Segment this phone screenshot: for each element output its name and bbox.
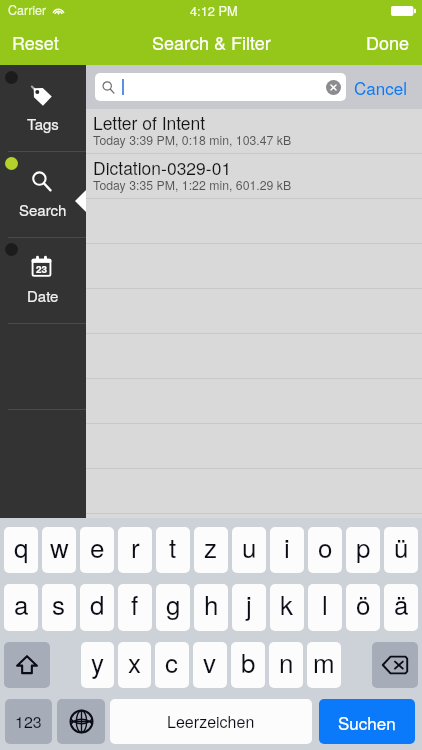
staticText: h: [204, 585, 219, 622]
staticText: z: [204, 528, 218, 565]
staticText: Leerzeichen: [167, 710, 255, 733]
button[interactable]: n: [269, 642, 303, 688]
button[interactable]: Next keyboard: [57, 699, 105, 744]
button[interactable]: g: [156, 584, 190, 631]
button[interactable]: l: [308, 584, 342, 631]
button[interactable]: r: [118, 527, 152, 573]
button[interactable]: y: [81, 642, 114, 688]
staticText: x: [128, 643, 142, 680]
button[interactable]: Suchen: [319, 699, 415, 744]
staticText: Letter of Intent: [93, 110, 206, 135]
staticText: Dictation-0329-01: [93, 155, 232, 180]
button[interactable]: Reset: [0, 25, 71, 65]
staticText: s: [52, 585, 66, 622]
button[interactable]: j: [232, 584, 266, 631]
staticText: 4:12 PM: [190, 1, 238, 19]
button[interactable]: z: [194, 527, 228, 573]
staticText: g: [166, 585, 181, 622]
staticText: q: [14, 528, 29, 565]
button[interactable]: ü: [384, 527, 418, 573]
button[interactable]: b: [231, 642, 265, 688]
button[interactable]: Leerzeichen: [110, 699, 312, 744]
staticText: ä: [394, 585, 409, 622]
button[interactable]: Clear text: [326, 80, 341, 95]
staticText: v: [203, 643, 217, 680]
button[interactable]: ä: [384, 584, 418, 631]
button[interactable]: 23: [0, 237, 86, 323]
staticText: o: [318, 528, 333, 565]
staticText: e: [90, 528, 105, 565]
staticText: ö: [356, 585, 371, 622]
staticText: j: [246, 585, 252, 622]
staticText: Carrier: [8, 1, 47, 19]
staticText: a: [14, 585, 29, 622]
staticText: f: [131, 585, 139, 622]
staticText: y: [91, 643, 105, 680]
staticText: Search & Filter: [152, 29, 271, 55]
staticText: l: [322, 585, 328, 622]
button[interactable]: a: [4, 584, 38, 631]
button[interactable]: Backspace: [372, 642, 418, 688]
staticText: Reset: [12, 29, 59, 55]
button[interactable]: p: [346, 527, 380, 573]
button[interactable]: v: [193, 642, 227, 688]
staticText: n: [279, 643, 294, 680]
staticText: Suchen: [338, 710, 396, 734]
button[interactable]: w: [42, 527, 76, 573]
staticText: Cancel: [354, 75, 407, 99]
button[interactable]: s: [42, 584, 76, 631]
staticText: d: [90, 585, 105, 622]
staticText: b: [241, 643, 256, 680]
button[interactable]: h: [194, 584, 228, 631]
staticText: w: [50, 528, 69, 565]
staticText: t: [169, 528, 177, 565]
button[interactable]: Cancel: [346, 65, 415, 109]
button[interactable]: Search: [0, 151, 86, 237]
button[interactable]: u: [232, 527, 266, 573]
staticText: 123: [15, 710, 42, 733]
button[interactable]: m: [307, 642, 341, 688]
staticText: Tags: [27, 113, 59, 134]
staticText: Date: [27, 285, 59, 306]
button[interactable]: ö: [346, 584, 380, 631]
button[interactable]: x: [118, 642, 151, 688]
button[interactable]: o: [308, 527, 342, 573]
staticText: r: [131, 528, 140, 565]
staticText: p: [356, 528, 371, 565]
button[interactable]: Shift: [4, 642, 50, 688]
button[interactable]: f: [118, 584, 152, 631]
button[interactable]: Tags: [0, 65, 86, 151]
button[interactable]: Done: [354, 25, 422, 65]
staticText: Today 3:39 PM, 0:18 min, 103.47 kB: [93, 131, 292, 149]
staticText: Today 3:35 PM, 1:22 min, 601.29 kB: [93, 176, 292, 194]
staticText: Search: [19, 199, 67, 220]
staticText: Done: [366, 29, 410, 55]
staticText: u: [242, 528, 257, 565]
button[interactable]: Clear text: [95, 73, 346, 101]
button[interactable]: q: [4, 527, 38, 573]
staticText: 23: [36, 262, 48, 276]
button[interactable]: t: [156, 527, 190, 573]
staticText: c: [165, 643, 179, 680]
button[interactable]: d: [80, 584, 114, 631]
button[interactable]: k: [270, 584, 304, 631]
staticText: k: [280, 585, 294, 622]
button[interactable]: Letter of Intent: [86, 109, 422, 154]
button[interactable]: c: [155, 642, 189, 688]
staticText: i: [284, 528, 290, 565]
button[interactable]: i: [270, 527, 304, 573]
button[interactable]: Dictation-0329-01: [86, 154, 422, 199]
button[interactable]: e: [80, 527, 114, 573]
button[interactable]: 123: [5, 699, 52, 744]
staticText: ü: [394, 528, 409, 565]
staticText: m: [313, 643, 335, 680]
